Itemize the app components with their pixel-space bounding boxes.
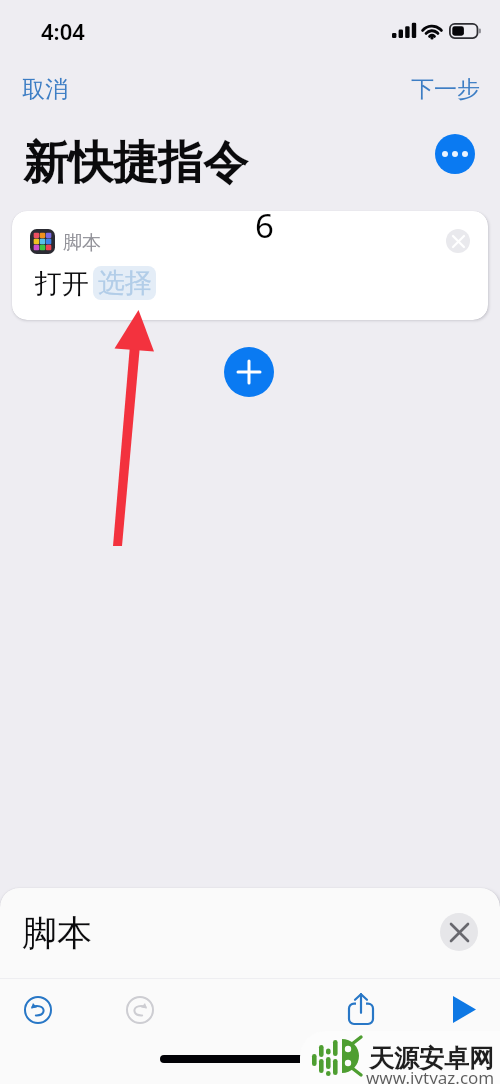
staticText: 下一步	[411, 75, 480, 104]
button[interactable]: Remove action	[446, 229, 470, 253]
staticText: 取消	[22, 75, 68, 104]
button[interactable]: Run	[447, 992, 481, 1026]
button[interactable]: Undo	[21, 993, 55, 1027]
button[interactable]: 选择	[93, 266, 156, 300]
staticText: 4:04	[41, 16, 85, 46]
button[interactable]: Clear	[440, 913, 478, 951]
staticText: 脚本	[22, 911, 92, 955]
staticText: 打开	[35, 267, 89, 301]
staticText: www.jytyaz.com	[366, 1066, 495, 1084]
button[interactable]: Share	[344, 992, 378, 1026]
button[interactable]: 取消	[14, 71, 76, 108]
button[interactable]: 下一步	[403, 71, 488, 108]
staticText: 新快捷指令	[23, 135, 248, 192]
staticText: 脚本	[63, 231, 101, 255]
button[interactable]: Redo	[123, 993, 157, 1027]
staticText: 6	[255, 211, 274, 248]
button[interactable]: Add action	[224, 347, 274, 397]
staticText: 选择	[98, 266, 152, 300]
button[interactable]: More options	[435, 134, 475, 174]
button[interactable]: 6	[12, 211, 488, 320]
staticText: 天源安卓网	[369, 1043, 494, 1074]
